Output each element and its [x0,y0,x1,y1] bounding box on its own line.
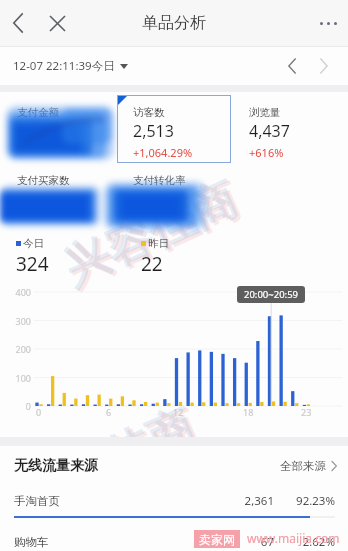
staticText: 23 [301,406,312,418]
staticText: 6 [106,406,112,418]
staticText: 卖家网 [199,532,235,547]
staticText: 手淘首页 [14,494,60,508]
button[interactable]: 支付买家数 [1,163,115,231]
button[interactable]: 购物车 [0,527,348,551]
staticText: 0 [36,406,42,418]
staticText: 2.62% [287,534,335,550]
button[interactable]: Close [40,6,74,40]
staticText: 单品分析 [142,13,206,33]
staticText: 67 [226,534,274,550]
staticText: 兴容佳商 [12,397,204,525]
staticText: 12 [173,406,184,418]
button[interactable]: 浏览量 [233,95,347,163]
staticText: 400 [15,286,31,298]
staticText: 昨日 [148,237,169,250]
staticText: 0 [25,400,31,412]
button[interactable]: 支付转化率 [117,163,231,231]
staticText: +1,064.29% [133,145,193,160]
staticText: 20:00~20:59 [244,288,298,301]
staticText: 全部来源 [280,459,326,473]
staticText: 浏览量 [249,106,281,119]
button[interactable]: 手淘首页 [0,486,348,527]
button[interactable]: Previous day [278,52,306,80]
staticText: 今日 [23,237,44,250]
staticText: 12-07 22:11:39今日 [13,58,115,74]
staticText: 兴容佳商 [15,399,207,527]
staticText: 22 [141,251,163,277]
staticText: 购物车 [14,535,49,549]
staticText: 访客数 [133,106,165,119]
button[interactable]: Back [1,6,35,40]
staticText: 2,513 [133,120,174,142]
staticText: 324 [16,251,49,277]
staticText: 2,361 [226,493,274,509]
staticText: 100 [15,372,31,384]
staticText: 支付买家数 [17,174,70,187]
staticText: 300 [15,315,31,327]
staticText: 兴容佳商 [54,170,246,298]
staticText: 4,437 [249,120,290,142]
staticText: 92.23% [287,493,335,509]
button[interactable]: 访客数 [117,95,231,163]
staticText: 18 [243,406,254,418]
staticText: 200 [15,343,31,355]
button[interactable]: Next day [310,52,338,80]
staticText: +616% [249,145,284,160]
staticText: 支付金额 [17,106,59,119]
staticText: 兴容佳商 [57,172,249,300]
staticText: 无线流量来源 [14,457,98,475]
button[interactable]: 无线流量来源 [0,446,348,486]
button[interactable]: 支付金额 [1,95,115,163]
button[interactable]: More options [311,6,345,40]
staticText: 支付转化率 [133,174,186,187]
button[interactable]: 12-07 22:11:39今日 [13,58,128,74]
staticText: www.maijia.com [247,530,340,546]
